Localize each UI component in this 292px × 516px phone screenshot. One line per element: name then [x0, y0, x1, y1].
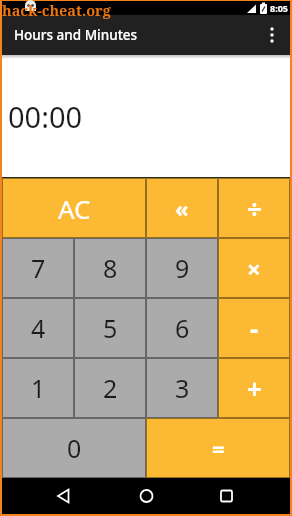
staticText: « — [175, 193, 189, 223]
button[interactable]: AC — [2, 178, 146, 238]
staticText: - — [250, 311, 259, 346]
button[interactable] — [194, 478, 290, 514]
staticText: × — [247, 252, 261, 285]
staticText: + — [247, 371, 262, 406]
staticText: AC — [58, 191, 91, 226]
staticText: 1 — [31, 371, 46, 405]
staticText: 8:05 — [270, 2, 288, 14]
staticText: 5 — [103, 311, 118, 345]
button[interactable]: 3 — [146, 358, 218, 418]
staticText: ÷ — [247, 191, 262, 226]
button[interactable]: 5 — [74, 298, 146, 358]
button[interactable] — [2, 478, 98, 514]
button[interactable]: × — [218, 238, 290, 298]
staticText: 00:00 — [8, 97, 83, 136]
button[interactable]: + — [218, 358, 290, 418]
staticText: 7 — [31, 251, 46, 285]
staticText: = — [212, 433, 225, 463]
button[interactable]: = — [146, 418, 290, 478]
staticText: 4 — [31, 311, 46, 345]
button[interactable]: 7 — [2, 238, 74, 298]
button[interactable]: ÷ — [218, 178, 290, 238]
staticText: 9 — [175, 251, 190, 285]
staticText: 3 — [175, 371, 190, 405]
button[interactable]: - — [218, 298, 290, 358]
button[interactable]: 1 — [2, 358, 74, 418]
button[interactable]: 0 — [2, 418, 146, 478]
staticText: Hours and Minutes — [14, 26, 138, 44]
button[interactable]: 8 — [74, 238, 146, 298]
staticText: 8 — [103, 251, 118, 285]
staticText: 2 — [103, 371, 118, 405]
button[interactable] — [264, 27, 280, 43]
staticText: hack-cheat.org — [2, 0, 111, 20]
staticText: 6 — [175, 311, 190, 345]
button[interactable]: « — [146, 178, 218, 238]
button[interactable] — [98, 478, 194, 514]
button[interactable]: 4 — [2, 298, 74, 358]
button[interactable]: 9 — [146, 238, 218, 298]
staticText: 0 — [67, 431, 82, 465]
button[interactable]: 6 — [146, 298, 218, 358]
button[interactable]: 2 — [74, 358, 146, 418]
